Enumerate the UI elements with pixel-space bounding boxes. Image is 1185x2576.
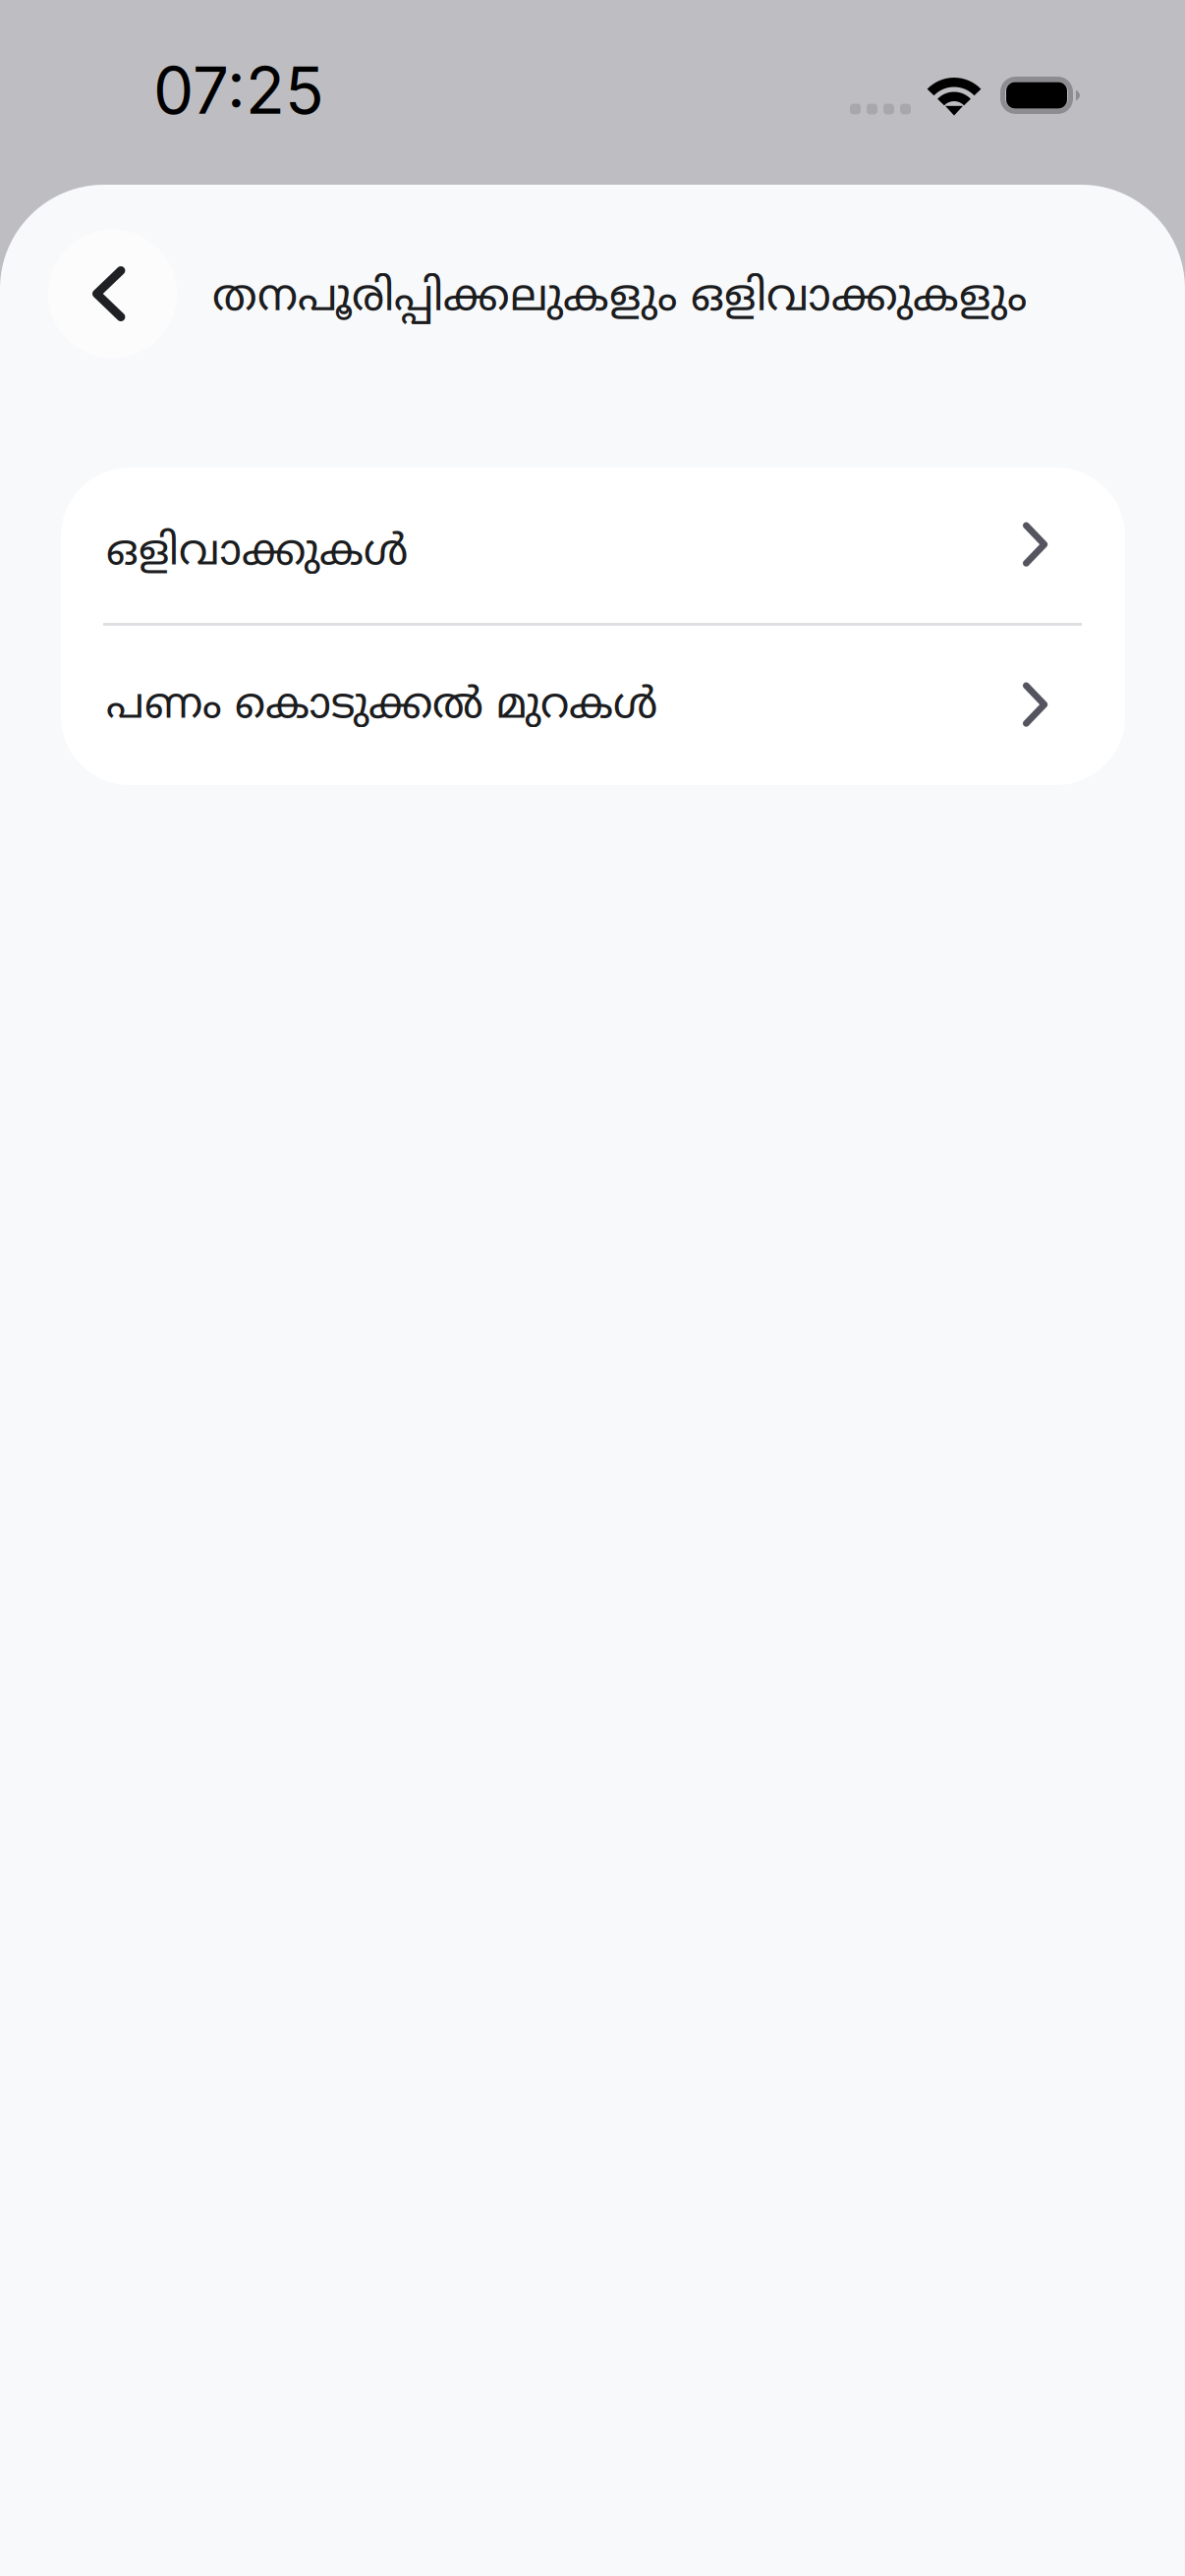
staticText: പണം കൊടുക്കൽ മുറകൾ [106, 681, 657, 734]
button[interactable]: Back [48, 229, 177, 358]
staticText: തനപൂരിപ്പിക്കലുകളും ഒളിവാക്കുകളും [212, 272, 1027, 327]
staticText: 07:25 [153, 52, 324, 129]
button[interactable]: ഒളിവാക്കുകൾ [61, 468, 1125, 623]
button[interactable]: പണം കൊടുക്കൽ മുറകൾ [61, 626, 1125, 785]
staticText: ഒളിവാക്കുകൾ [106, 528, 408, 581]
